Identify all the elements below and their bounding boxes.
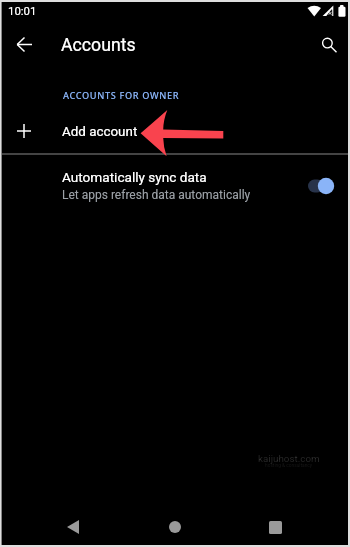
staticText: 10:01	[8, 4, 37, 17]
button[interactable]: Navigate up	[6, 26, 42, 62]
button[interactable]: Add account	[2, 112, 350, 153]
staticText: ACCOUNTS FOR OWNER	[63, 89, 180, 102]
button[interactable]: Automatically sync data	[2, 156, 350, 206]
staticText: hosting & consultancy	[265, 463, 313, 469]
button[interactable]: Search	[311, 27, 347, 63]
button[interactable]: Back	[57, 511, 89, 543]
staticText: kaijuhost.com	[258, 453, 320, 464]
button[interactable]: Home	[159, 511, 191, 543]
staticText: Add account	[62, 124, 138, 140]
button[interactable]: Recent apps	[259, 511, 291, 543]
staticText: Accounts	[61, 35, 136, 56]
staticText: Let apps refresh data automatically	[62, 188, 251, 202]
staticText: Automatically sync data	[62, 169, 207, 185]
